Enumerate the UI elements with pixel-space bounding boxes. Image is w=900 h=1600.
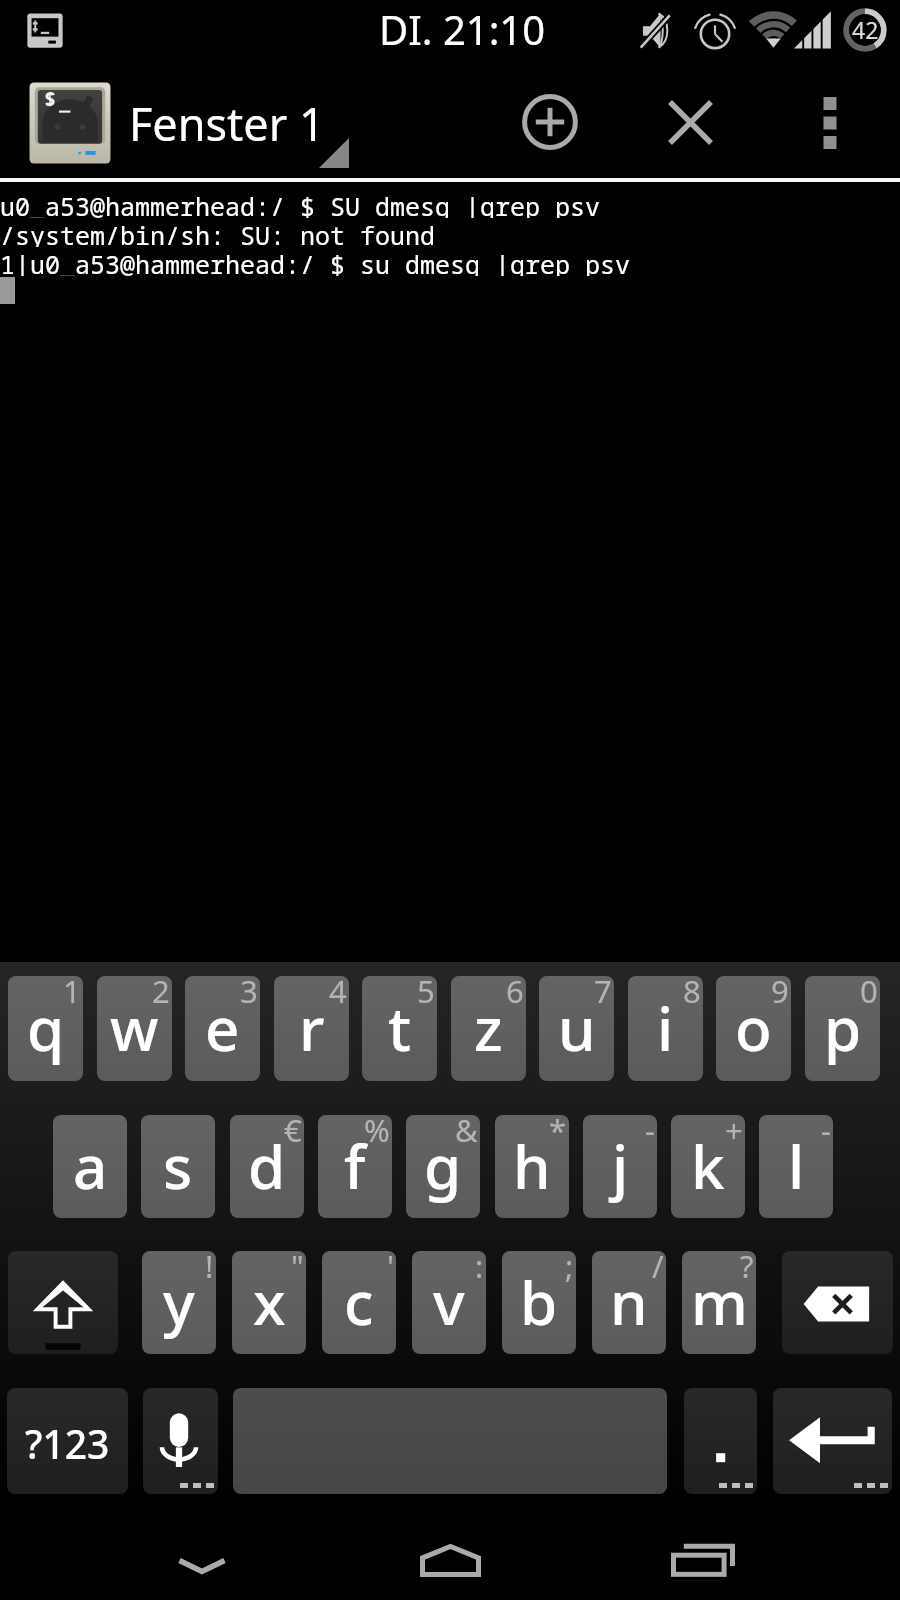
staticText: * [549, 1115, 567, 1151]
staticText: f [344, 1125, 366, 1207]
staticText: h [513, 1125, 551, 1207]
staticText: v [433, 1261, 465, 1343]
button[interactable]: Backspace [782, 1251, 893, 1354]
staticText: & [455, 1115, 478, 1151]
button[interactable]: a [53, 1115, 127, 1218]
staticText: 1|u0_a53@hammerhead:/ $ su dmesg |grep p… [0, 247, 631, 276]
button[interactable]: * [495, 1115, 569, 1218]
staticText: / [652, 1251, 664, 1287]
staticText: d [248, 1125, 286, 1207]
staticText: x [253, 1261, 286, 1343]
button[interactable]: 1 [8, 976, 83, 1081]
staticText: l [788, 1125, 805, 1207]
button[interactable]: Fenster 1 [130, 62, 460, 178]
button[interactable]: : [412, 1251, 486, 1354]
staticText: + [725, 1115, 743, 1151]
button[interactable]: 8 [628, 976, 703, 1081]
button[interactable]: Shift [8, 1251, 118, 1354]
staticText: ; [565, 1251, 574, 1287]
staticText: : [475, 1251, 484, 1287]
staticText: Fenster 1 [129, 93, 325, 154]
staticText: k [691, 1125, 725, 1207]
button[interactable]: % [318, 1115, 392, 1218]
staticText: e [205, 987, 240, 1069]
button[interactable]: 3 [185, 976, 260, 1081]
button[interactable]: Enter [773, 1388, 892, 1494]
staticText: 2 [152, 976, 170, 1012]
button[interactable]: ! [142, 1251, 216, 1354]
staticText: s [163, 1125, 193, 1207]
staticText: g [424, 1125, 462, 1207]
staticText: 6 [506, 976, 524, 1012]
staticText: ? [740, 1251, 754, 1287]
staticText: u [558, 987, 596, 1069]
staticText: " [291, 1251, 304, 1287]
button[interactable]: 7 [539, 976, 614, 1081]
button[interactable]: " [232, 1251, 306, 1354]
button[interactable]: € [230, 1115, 304, 1218]
staticText: y [163, 1261, 195, 1343]
staticText: ' [387, 1251, 394, 1287]
staticText: w [110, 987, 159, 1069]
button[interactable]: ; [502, 1251, 576, 1354]
button[interactable]: ? [682, 1251, 756, 1354]
staticText: ?123 [25, 1417, 110, 1470]
staticText: q [27, 987, 65, 1069]
button[interactable]: Recent apps [632, 1512, 772, 1600]
staticText: b [520, 1261, 558, 1343]
staticText: DI. 21:10 [379, 2, 546, 56]
button[interactable]: Voice input [143, 1388, 218, 1494]
staticText: a [73, 1125, 108, 1207]
button[interactable]: 9 [716, 976, 791, 1081]
staticText: r [299, 987, 325, 1069]
staticText: m [691, 1261, 748, 1343]
button[interactable]: 0 [805, 976, 880, 1081]
button[interactable]: 2 [97, 976, 172, 1081]
staticText: 42 [852, 14, 879, 45]
button[interactable]: ?123 [7, 1388, 128, 1494]
staticText: u0_a53@hammerhead:/ $ SU dmesg |grep psv [0, 189, 601, 218]
button[interactable]: Terminal [20, 74, 120, 172]
staticText: 1 [63, 976, 81, 1012]
staticText: o [735, 987, 772, 1069]
staticText: - [645, 1115, 655, 1151]
staticText: - [821, 1115, 831, 1151]
button[interactable]: / [592, 1251, 666, 1354]
button[interactable]: 6 [451, 976, 526, 1081]
staticText: /system/bin/sh: SU: not found [0, 218, 436, 247]
button[interactable]: Home [380, 1512, 520, 1600]
button[interactable]: ' [322, 1251, 396, 1354]
button[interactable]: 4 [274, 976, 349, 1081]
staticText: % [364, 1115, 390, 1151]
staticText: 7 [594, 976, 612, 1012]
button[interactable]: New window [494, 62, 606, 178]
staticText: 5 [417, 976, 435, 1012]
button[interactable]: Hide keyboard [132, 1512, 272, 1600]
button[interactable]: - [759, 1115, 833, 1218]
staticText: ! [205, 1251, 214, 1287]
staticText: 9 [771, 976, 789, 1012]
button[interactable]: More options [780, 62, 880, 178]
button[interactable]: - [583, 1115, 657, 1218]
staticText: 8 [683, 976, 701, 1012]
staticText: 0 [860, 976, 878, 1012]
staticText: 4 [329, 976, 347, 1012]
staticText: n [610, 1261, 648, 1343]
staticText: z [474, 987, 503, 1069]
staticText: € [284, 1115, 302, 1151]
staticText: i [657, 987, 674, 1069]
button[interactable]: Period [684, 1388, 757, 1494]
button[interactable]: s [141, 1115, 215, 1218]
button[interactable]: + [671, 1115, 745, 1218]
button[interactable]: & [406, 1115, 480, 1218]
staticText: p [824, 987, 862, 1069]
staticText: 3 [240, 976, 258, 1012]
staticText: j [612, 1125, 629, 1207]
staticText: c [344, 1261, 374, 1343]
button[interactable]: 5 [362, 976, 437, 1081]
staticText: t [388, 987, 411, 1069]
button[interactable]: Close window [634, 62, 746, 178]
